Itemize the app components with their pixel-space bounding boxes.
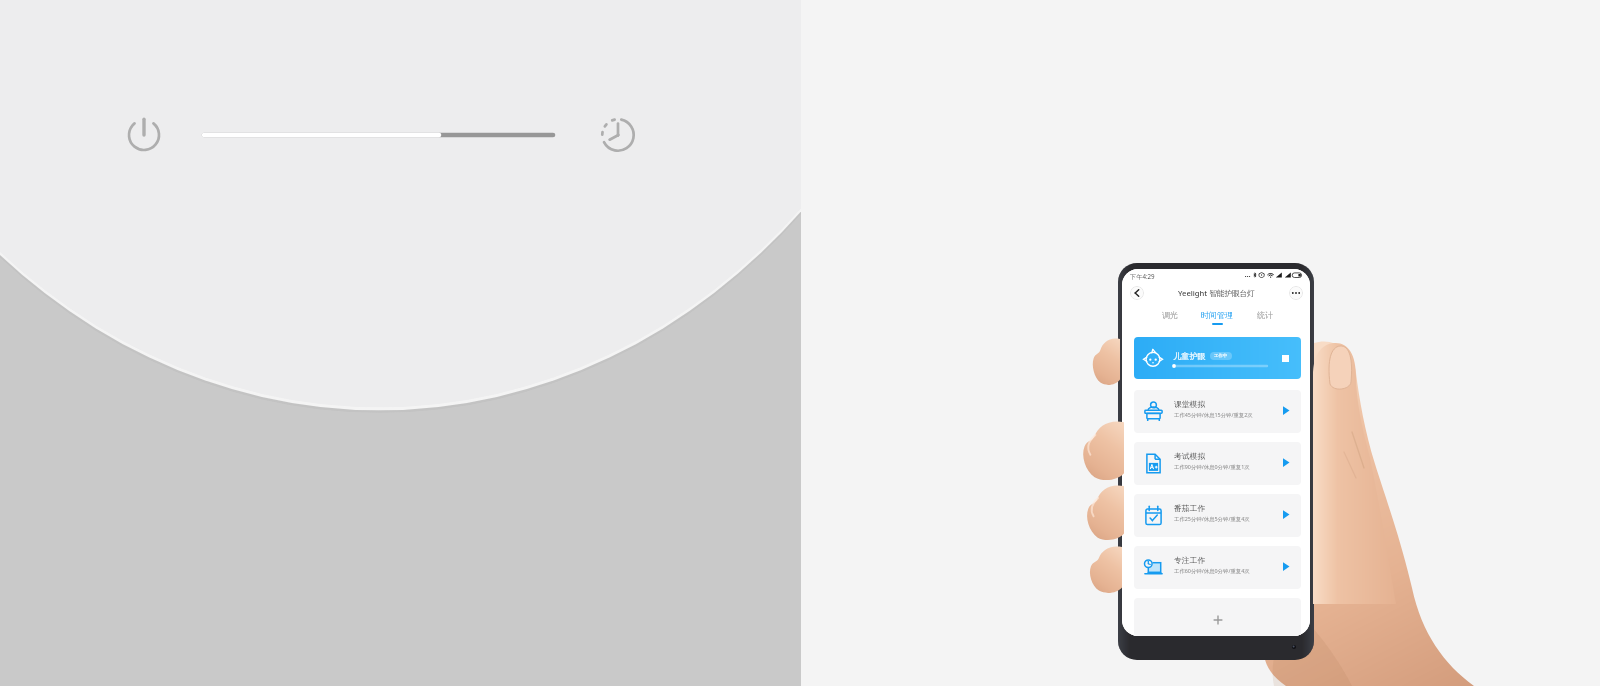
button[interactable]: 时间管理	[1193, 305, 1241, 329]
staticText: 工作45分钟/休息15分钟/重复2次	[1174, 411, 1253, 418]
button[interactable]: Back	[1130, 286, 1144, 300]
staticText: 工作25分钟/休息5分钟/重复4次	[1174, 515, 1250, 522]
staticText: 工作中	[1214, 353, 1228, 359]
button[interactable]: Timer	[598, 115, 638, 155]
button[interactable]: 课堂模拟	[1134, 390, 1301, 433]
button[interactable]: 儿童护眼	[1134, 337, 1301, 379]
button[interactable]: Start 专注工作	[1279, 560, 1293, 574]
staticText: 工作90分钟/休息0分钟/重复1次	[1174, 463, 1250, 470]
button[interactable]: 专注工作	[1134, 546, 1301, 589]
button[interactable]: 考试模拟	[1134, 442, 1301, 485]
button[interactable]: Start 课堂模拟	[1279, 404, 1293, 418]
button[interactable]: Add	[1134, 598, 1301, 636]
staticText: 专注工作	[1174, 555, 1206, 565]
staticText: 时间管理	[1201, 310, 1233, 320]
staticText: 课堂模拟	[1174, 399, 1206, 409]
staticText: 工作60分钟/休息0分钟/重复4次	[1174, 567, 1250, 574]
staticText: 调光	[1162, 310, 1178, 320]
staticText: 考试模拟	[1174, 451, 1206, 461]
button[interactable]: Start 考试模拟	[1279, 456, 1293, 470]
button[interactable]: Start 番茄工作	[1279, 508, 1293, 522]
button[interactable]: 番茄工作	[1134, 494, 1301, 537]
staticText: 番茄工作	[1174, 503, 1206, 513]
staticText: 儿童护眼	[1173, 351, 1206, 361]
button[interactable]: 统计	[1241, 305, 1289, 329]
button[interactable]: 调光	[1146, 305, 1194, 329]
staticText: 统计	[1257, 310, 1273, 320]
button[interactable]: Power	[124, 115, 164, 155]
button[interactable]: More options	[1289, 286, 1303, 300]
staticText: 下午4:29	[1130, 272, 1155, 280]
staticText: Yeelight 智能护眼台灯	[1178, 288, 1255, 298]
